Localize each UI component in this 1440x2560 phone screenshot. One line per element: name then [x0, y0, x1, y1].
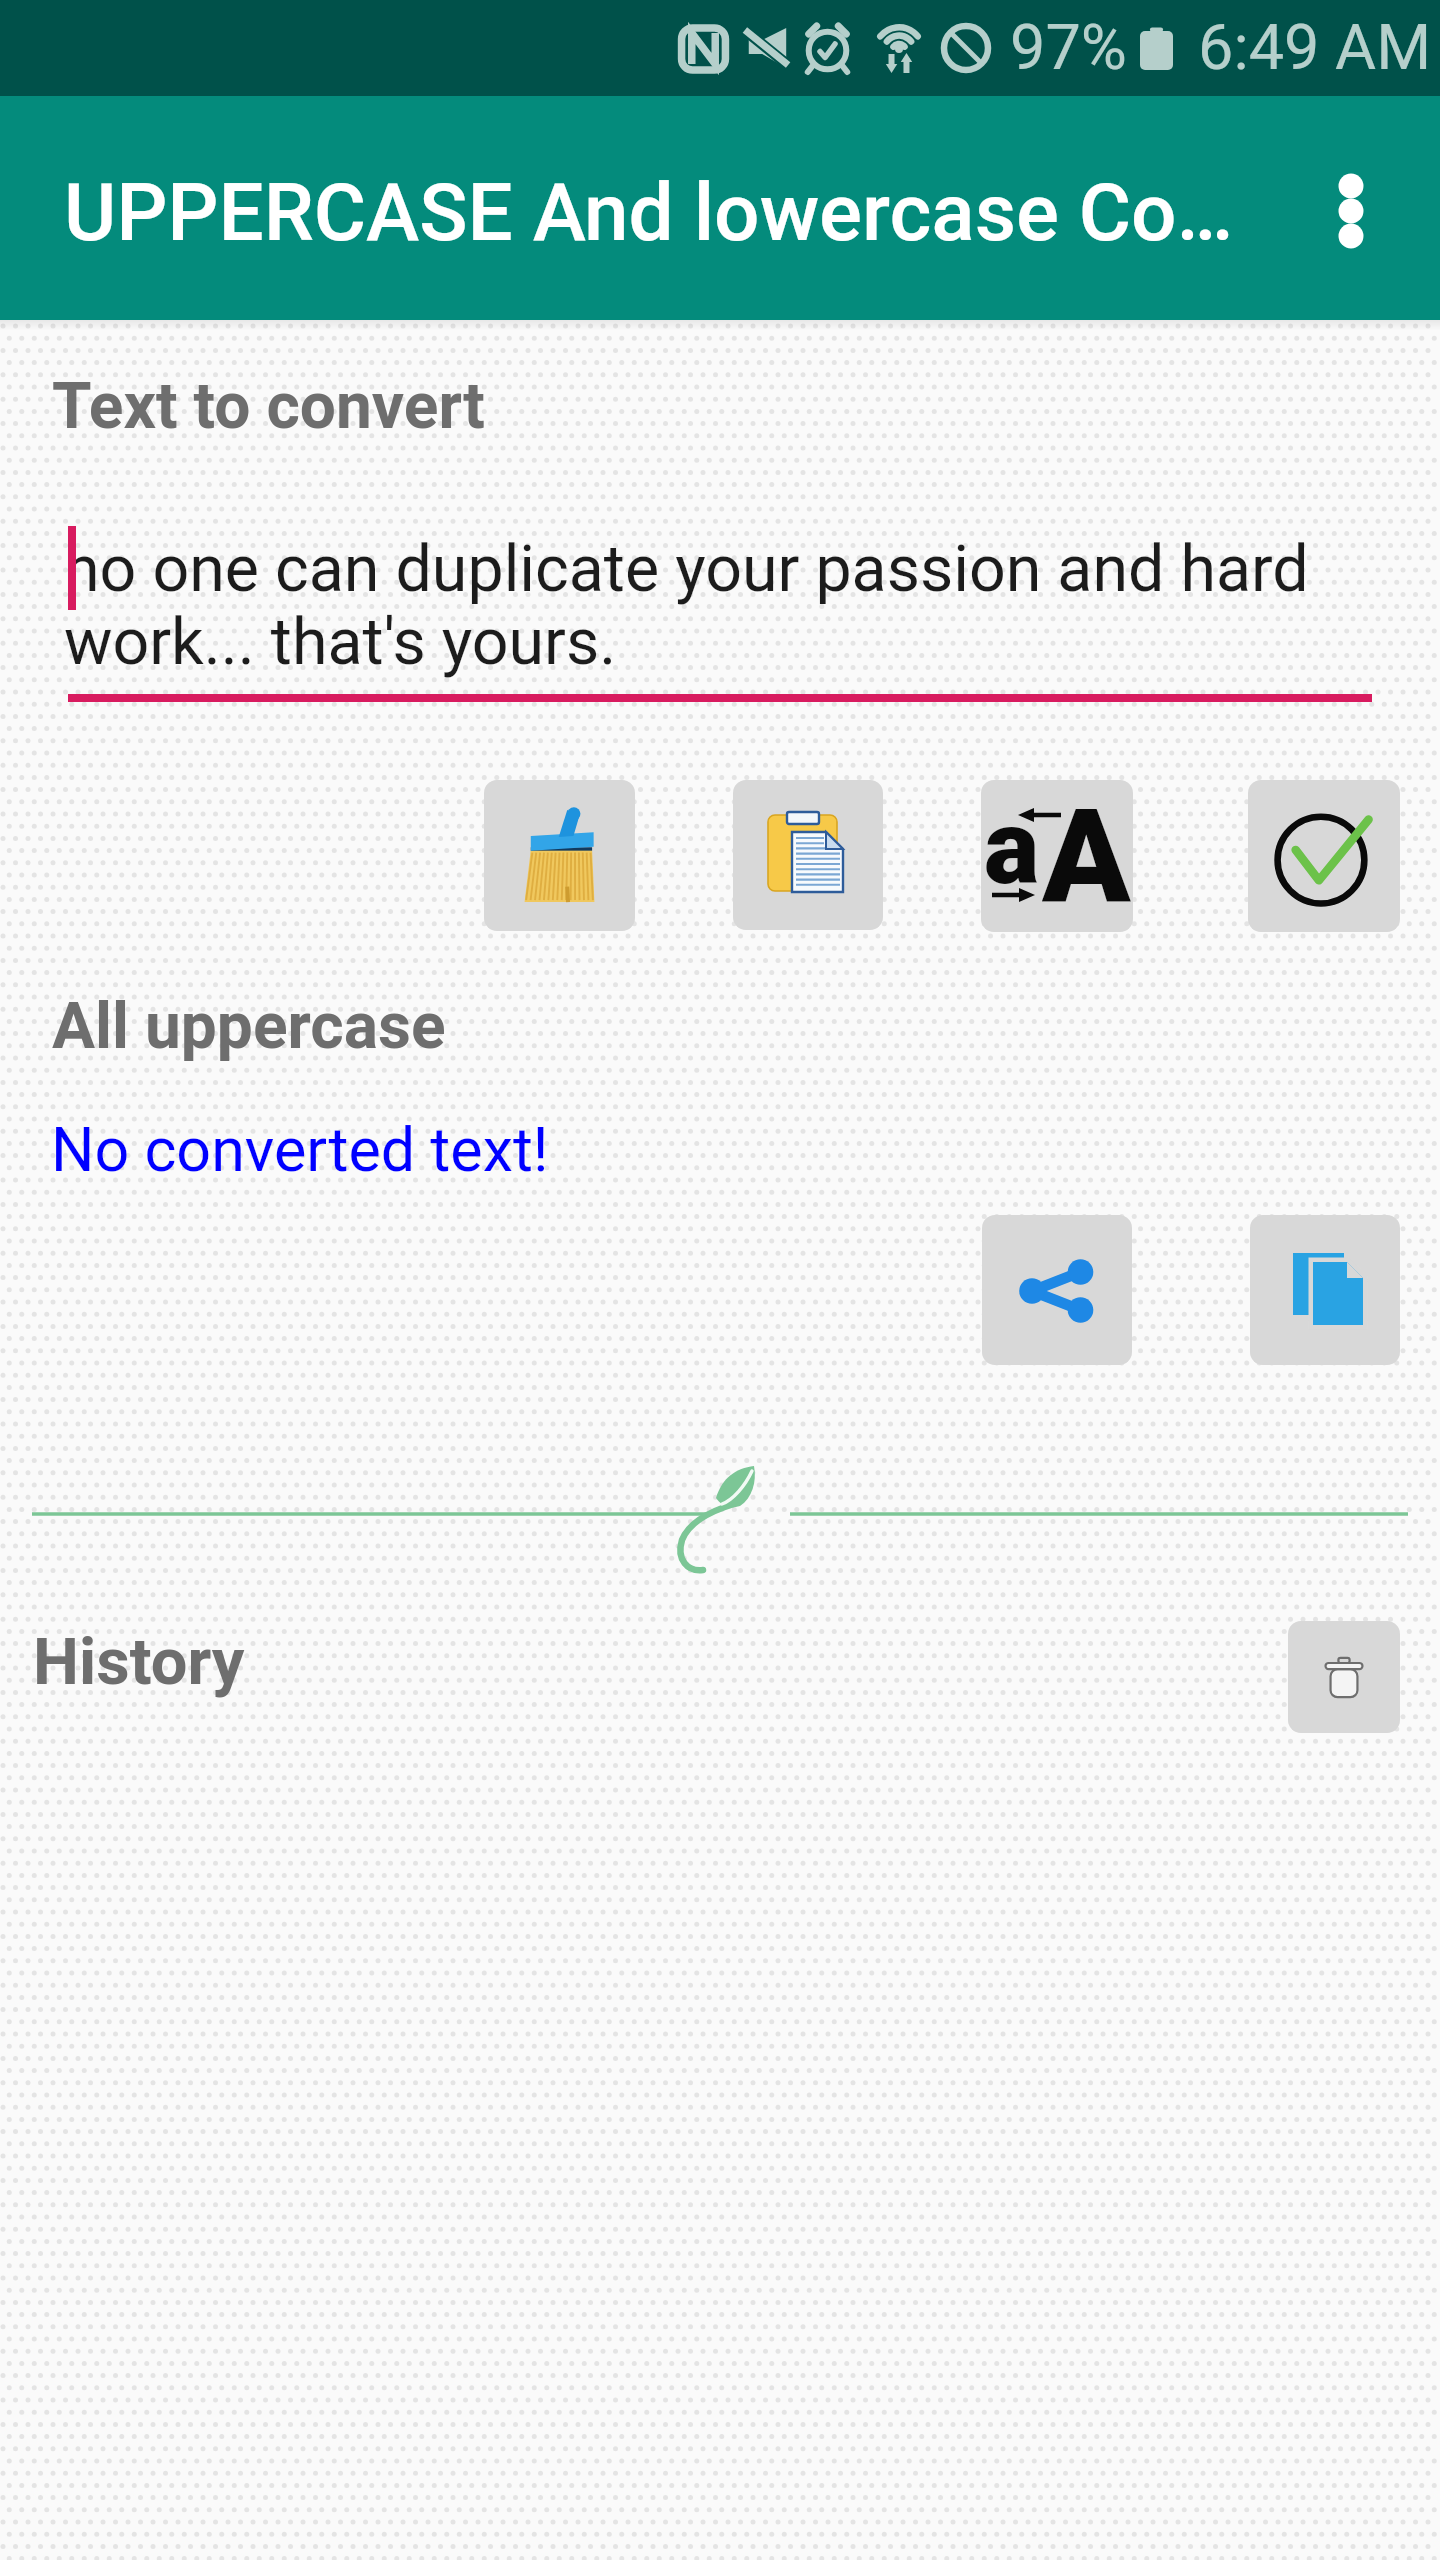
button[interactable]: Paste — [733, 780, 883, 930]
staticText: All uppercase — [52, 989, 446, 1064]
staticText: a — [984, 787, 1040, 909]
staticText: UPPERCASE And lowercase Co… — [64, 166, 1234, 260]
button[interactable]: Copy — [1250, 1215, 1400, 1365]
staticText: No converted text! — [51, 1114, 549, 1185]
button[interactable]: More options — [1296, 153, 1406, 263]
button[interactable]: Clear history — [1288, 1621, 1400, 1733]
button[interactable]: Convert — [1248, 780, 1400, 932]
button[interactable]: Share — [982, 1215, 1132, 1365]
staticText: History — [33, 1624, 245, 1700]
staticText: 6:49 AM — [1198, 11, 1432, 85]
button[interactable]: Change case — [981, 780, 1133, 932]
staticText: Text to convert — [52, 369, 485, 444]
button[interactable]: Clear text — [484, 780, 635, 931]
staticText: 97% — [1010, 11, 1127, 85]
staticText: A — [1042, 780, 1131, 930]
staticText: no one can duplicate your passion and ha… — [64, 531, 1382, 680]
